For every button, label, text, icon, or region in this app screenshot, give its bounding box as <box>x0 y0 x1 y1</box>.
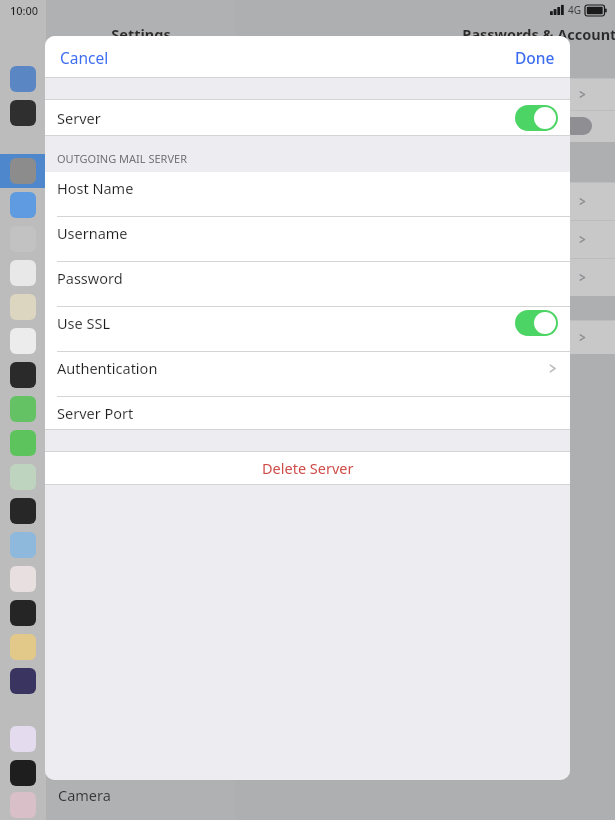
button[interactable]: Username <box>45 217 570 249</box>
staticText: Passwords & Accounts <box>462 24 615 44</box>
staticText: Settings <box>111 24 171 44</box>
button[interactable]: Toggle <box>515 310 558 336</box>
button[interactable]: Authentication <box>45 352 570 384</box>
staticText: Delete Server <box>262 458 354 478</box>
staticText: Host Name <box>57 178 134 198</box>
staticText: Server <box>57 108 101 128</box>
button[interactable]: Done <box>500 38 570 77</box>
staticText: Use SSL <box>57 313 111 333</box>
staticText: OUTGOING MAIL SERVER <box>57 151 187 166</box>
button[interactable]: Cancel <box>45 38 124 77</box>
staticText: Server Port <box>57 403 134 423</box>
staticText: Done <box>515 47 555 68</box>
other: More <box>547 363 558 374</box>
staticText: Password <box>57 268 123 288</box>
staticText: Camera <box>58 785 111 805</box>
staticText: Username <box>57 223 128 243</box>
button[interactable]: Server Port <box>45 397 570 429</box>
staticText: 4G <box>568 3 581 17</box>
button[interactable]: Use SSL <box>45 307 570 339</box>
button[interactable]: Host Name <box>45 172 570 204</box>
button[interactable]: Password <box>45 262 570 294</box>
button[interactable]: Toggle <box>515 105 558 131</box>
staticText: Authentication <box>57 358 158 378</box>
button[interactable]: Delete Server <box>45 452 570 484</box>
staticText: Cancel <box>60 47 109 68</box>
staticText: 10:00 <box>10 3 39 18</box>
button[interactable]: Server <box>45 100 570 135</box>
